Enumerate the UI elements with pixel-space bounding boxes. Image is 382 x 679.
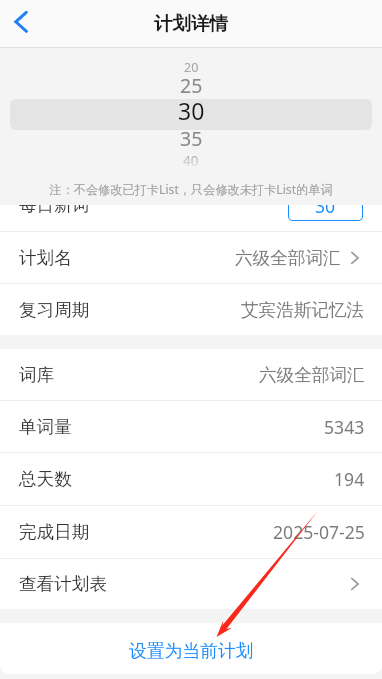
staticText: 每日新词 <box>19 194 90 216</box>
staticText: 完成日期 <box>19 521 90 543</box>
staticText: 30 <box>315 194 336 218</box>
staticText: 25 <box>180 72 203 99</box>
staticText: 2025-07-25 <box>273 520 365 544</box>
button[interactable]: Back <box>2 0 42 44</box>
staticText: 注：不会修改已打卡List，只会修改未打卡List的单词 <box>49 181 333 197</box>
button[interactable]: 完成日期 <box>0 506 382 559</box>
staticText: 计划名 <box>19 247 72 269</box>
staticText: 总天数 <box>19 468 72 490</box>
staticText: 查看计划表 <box>19 573 107 595</box>
staticText: 194 <box>334 467 365 491</box>
button[interactable]: 每日新词 <box>0 48 382 231</box>
button[interactable]: 查看计划表 <box>0 559 382 609</box>
button[interactable]: 单词量 <box>0 401 382 453</box>
button[interactable]: 词库 <box>0 349 382 401</box>
button[interactable]: 总天数 <box>0 453 382 506</box>
staticText: 设置为当前计划 <box>129 640 254 662</box>
staticText: 词库 <box>19 364 55 386</box>
staticText: 40 <box>183 152 199 170</box>
staticText: 复习周期 <box>19 299 90 321</box>
staticText: 5343 <box>324 415 365 439</box>
staticText: 六级全部词汇 <box>235 247 341 269</box>
button[interactable]: 设置为当前计划 <box>0 623 382 674</box>
button[interactable]: 复习周期 <box>0 284 382 335</box>
staticText: 六级全部词汇 <box>259 364 365 386</box>
button[interactable]: 计划名 <box>0 232 382 284</box>
staticText: 艾宾浩斯记忆法 <box>241 299 365 321</box>
staticText: 20 <box>184 59 199 76</box>
staticText: 30 <box>178 95 205 126</box>
staticText: 35 <box>180 125 203 152</box>
staticText: 单词量 <box>19 416 72 438</box>
staticText: 计划详情 <box>154 12 228 35</box>
